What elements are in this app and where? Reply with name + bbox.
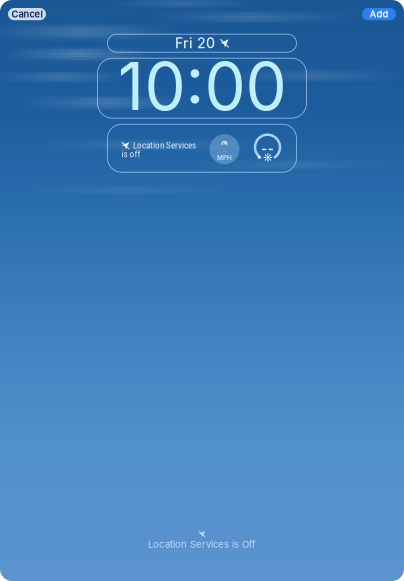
button[interactable]: Cancel	[8, 8, 46, 20]
staticText: is off	[121, 149, 140, 159]
staticText: Cancel	[11, 8, 42, 20]
button[interactable]: Add	[362, 8, 396, 20]
staticText: Fri 20	[175, 35, 215, 52]
staticText: 10:00	[117, 47, 286, 126]
staticText: --	[222, 147, 226, 154]
staticText: Add	[369, 8, 388, 20]
staticText: Location Services is Off	[148, 538, 256, 550]
staticText: MPH	[217, 154, 232, 161]
staticText: Location Services	[133, 140, 196, 151]
